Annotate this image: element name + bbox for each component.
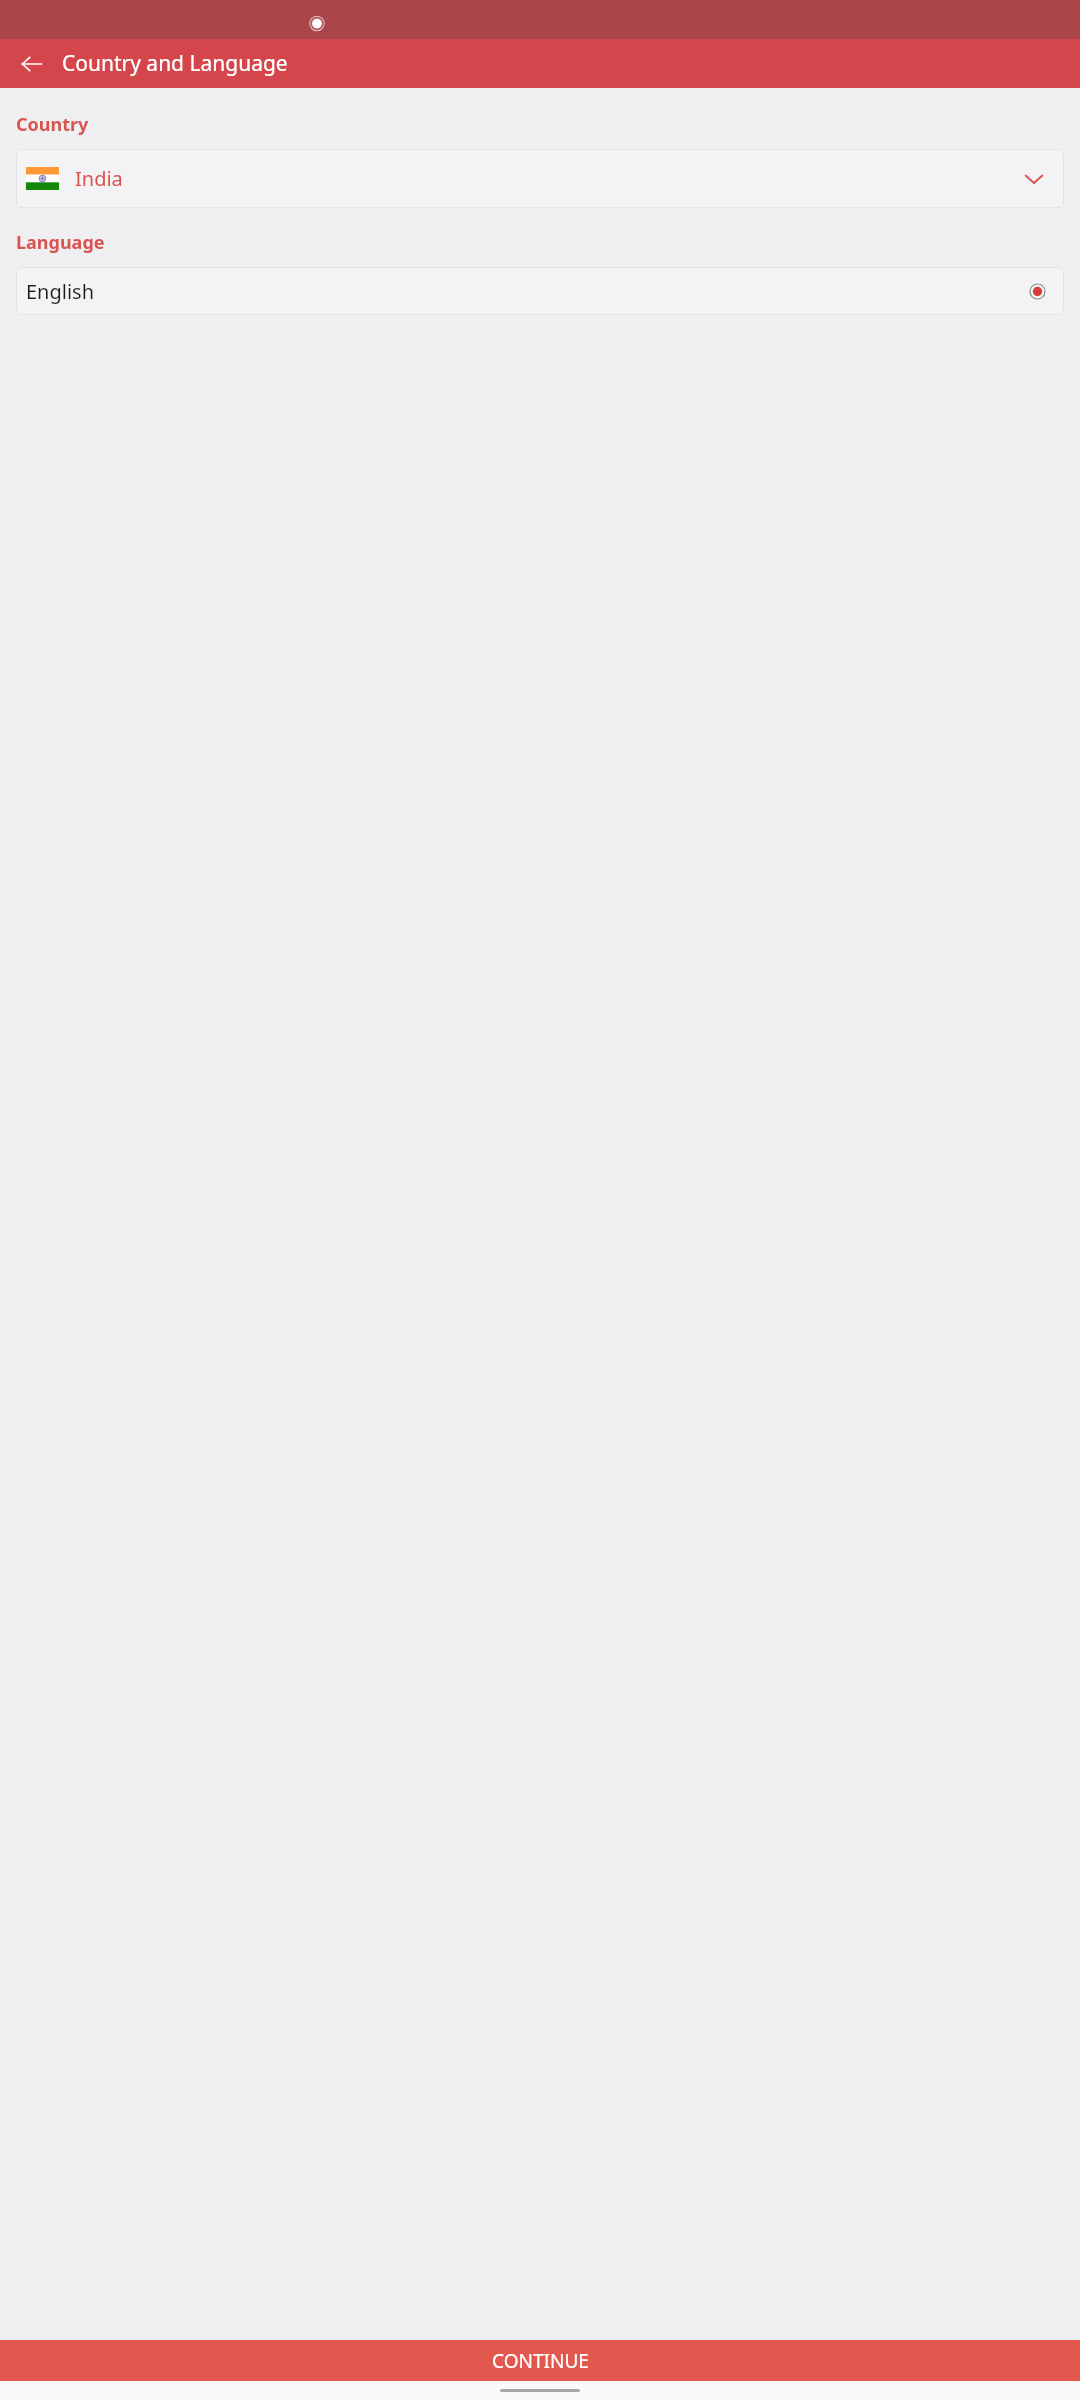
button[interactable]: India — [16, 149, 1064, 208]
staticText: English — [26, 278, 95, 305]
staticText: Country and Language — [62, 49, 288, 78]
button[interactable]: English — [16, 267, 1064, 315]
button[interactable]: Back — [10, 42, 54, 86]
staticText: CONTINUE — [492, 2348, 589, 2374]
staticText: Country — [16, 112, 89, 137]
staticText: Language — [16, 230, 105, 255]
staticText: India — [75, 165, 123, 192]
button[interactable]: CONTINUE — [0, 2340, 1080, 2381]
